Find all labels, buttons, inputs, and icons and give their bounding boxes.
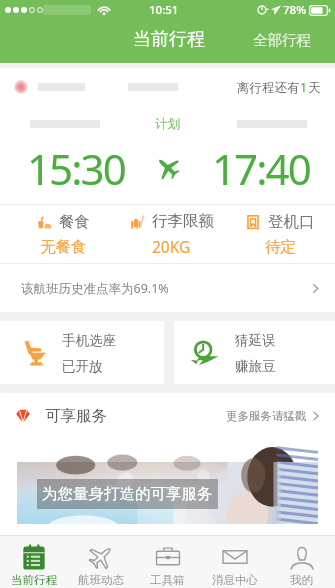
button[interactable]: 登机口 <box>226 205 335 263</box>
staticText: 1 <box>300 79 308 96</box>
staticText: 15:30 <box>27 140 125 192</box>
button[interactable]: 我的 <box>268 536 335 588</box>
staticText: 更多服务请猛戳 <box>226 409 307 423</box>
staticText: 全部行程 <box>253 31 311 49</box>
staticText: 离行程还有 <box>237 80 300 96</box>
button[interactable]: 工具箱 <box>134 536 201 588</box>
staticText: 当前行程 <box>11 573 57 587</box>
button[interactable]: 该航班历史准点率为69.1% <box>0 264 335 312</box>
staticText: 该航班历史准点率为69.1% <box>21 280 169 297</box>
staticText: 赚旅豆 <box>235 358 276 375</box>
button[interactable]: 消息中心 <box>201 536 268 588</box>
staticText: 手机选座 <box>62 332 116 349</box>
staticText: 消息中心 <box>212 573 258 587</box>
staticText: 20KG <box>152 236 191 257</box>
staticText: 餐食 <box>59 212 90 232</box>
button[interactable]: 可享服务 <box>0 393 335 438</box>
button[interactable]: 全部行程 <box>248 24 316 56</box>
staticText: 78% <box>283 2 306 18</box>
button[interactable]: 当前行程 <box>0 536 67 588</box>
staticText: 天 <box>308 80 321 96</box>
staticText: 17:40 <box>212 140 310 192</box>
staticText: 待定 <box>265 237 296 257</box>
staticText: 10:51 <box>149 2 179 18</box>
staticText: 已开放 <box>62 358 103 375</box>
button[interactable]: 猜延误 <box>174 321 335 384</box>
button[interactable]: 当前行程 <box>128 21 210 58</box>
staticText: 航班动态 <box>78 573 124 587</box>
staticText: 登机口 <box>268 212 315 232</box>
staticText: 猜延误 <box>235 332 276 349</box>
button[interactable]: 手机选座 <box>0 321 164 384</box>
button[interactable]: 餐食 <box>9 205 117 263</box>
staticText: 可享服务 <box>45 406 107 426</box>
staticText: 工具箱 <box>150 573 185 587</box>
button[interactable]: 行李限额 <box>117 205 226 263</box>
staticText: 计划 <box>155 116 180 132</box>
staticText: 行李限额 <box>152 211 214 231</box>
staticText: 当前行程 <box>133 28 205 51</box>
button[interactable]: 航班动态 <box>67 536 134 588</box>
button[interactable]: 为您量身打造的可享服务 <box>17 462 318 524</box>
staticText: 为您量身打造的可享服务 <box>42 484 213 504</box>
staticText: 我的 <box>290 573 313 587</box>
staticText: 无餐食 <box>40 237 87 257</box>
